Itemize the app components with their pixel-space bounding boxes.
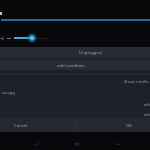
button[interactable]: Back <box>28 136 43 150</box>
staticText: OK <box>126 122 133 128</box>
button[interactable]: Unplugged <box>0 47 150 57</box>
button[interactable]: Cancel <box>10 118 32 132</box>
staticText: Cancel <box>14 122 28 128</box>
staticText: Unplugged <box>79 49 102 55</box>
button[interactable]: OK <box>121 118 138 132</box>
staticText: whe <box>144 101 150 107</box>
staticText: Show notific <box>124 78 149 84</box>
staticText: add condition <box>57 62 85 68</box>
staticText: ...ia.ogg <box>0 89 16 95</box>
button[interactable]: Home <box>69 136 84 150</box>
button[interactable]: Recent apps <box>110 136 125 150</box>
button[interactable]: add condition <box>0 60 150 70</box>
staticText: wh <box>144 111 150 117</box>
